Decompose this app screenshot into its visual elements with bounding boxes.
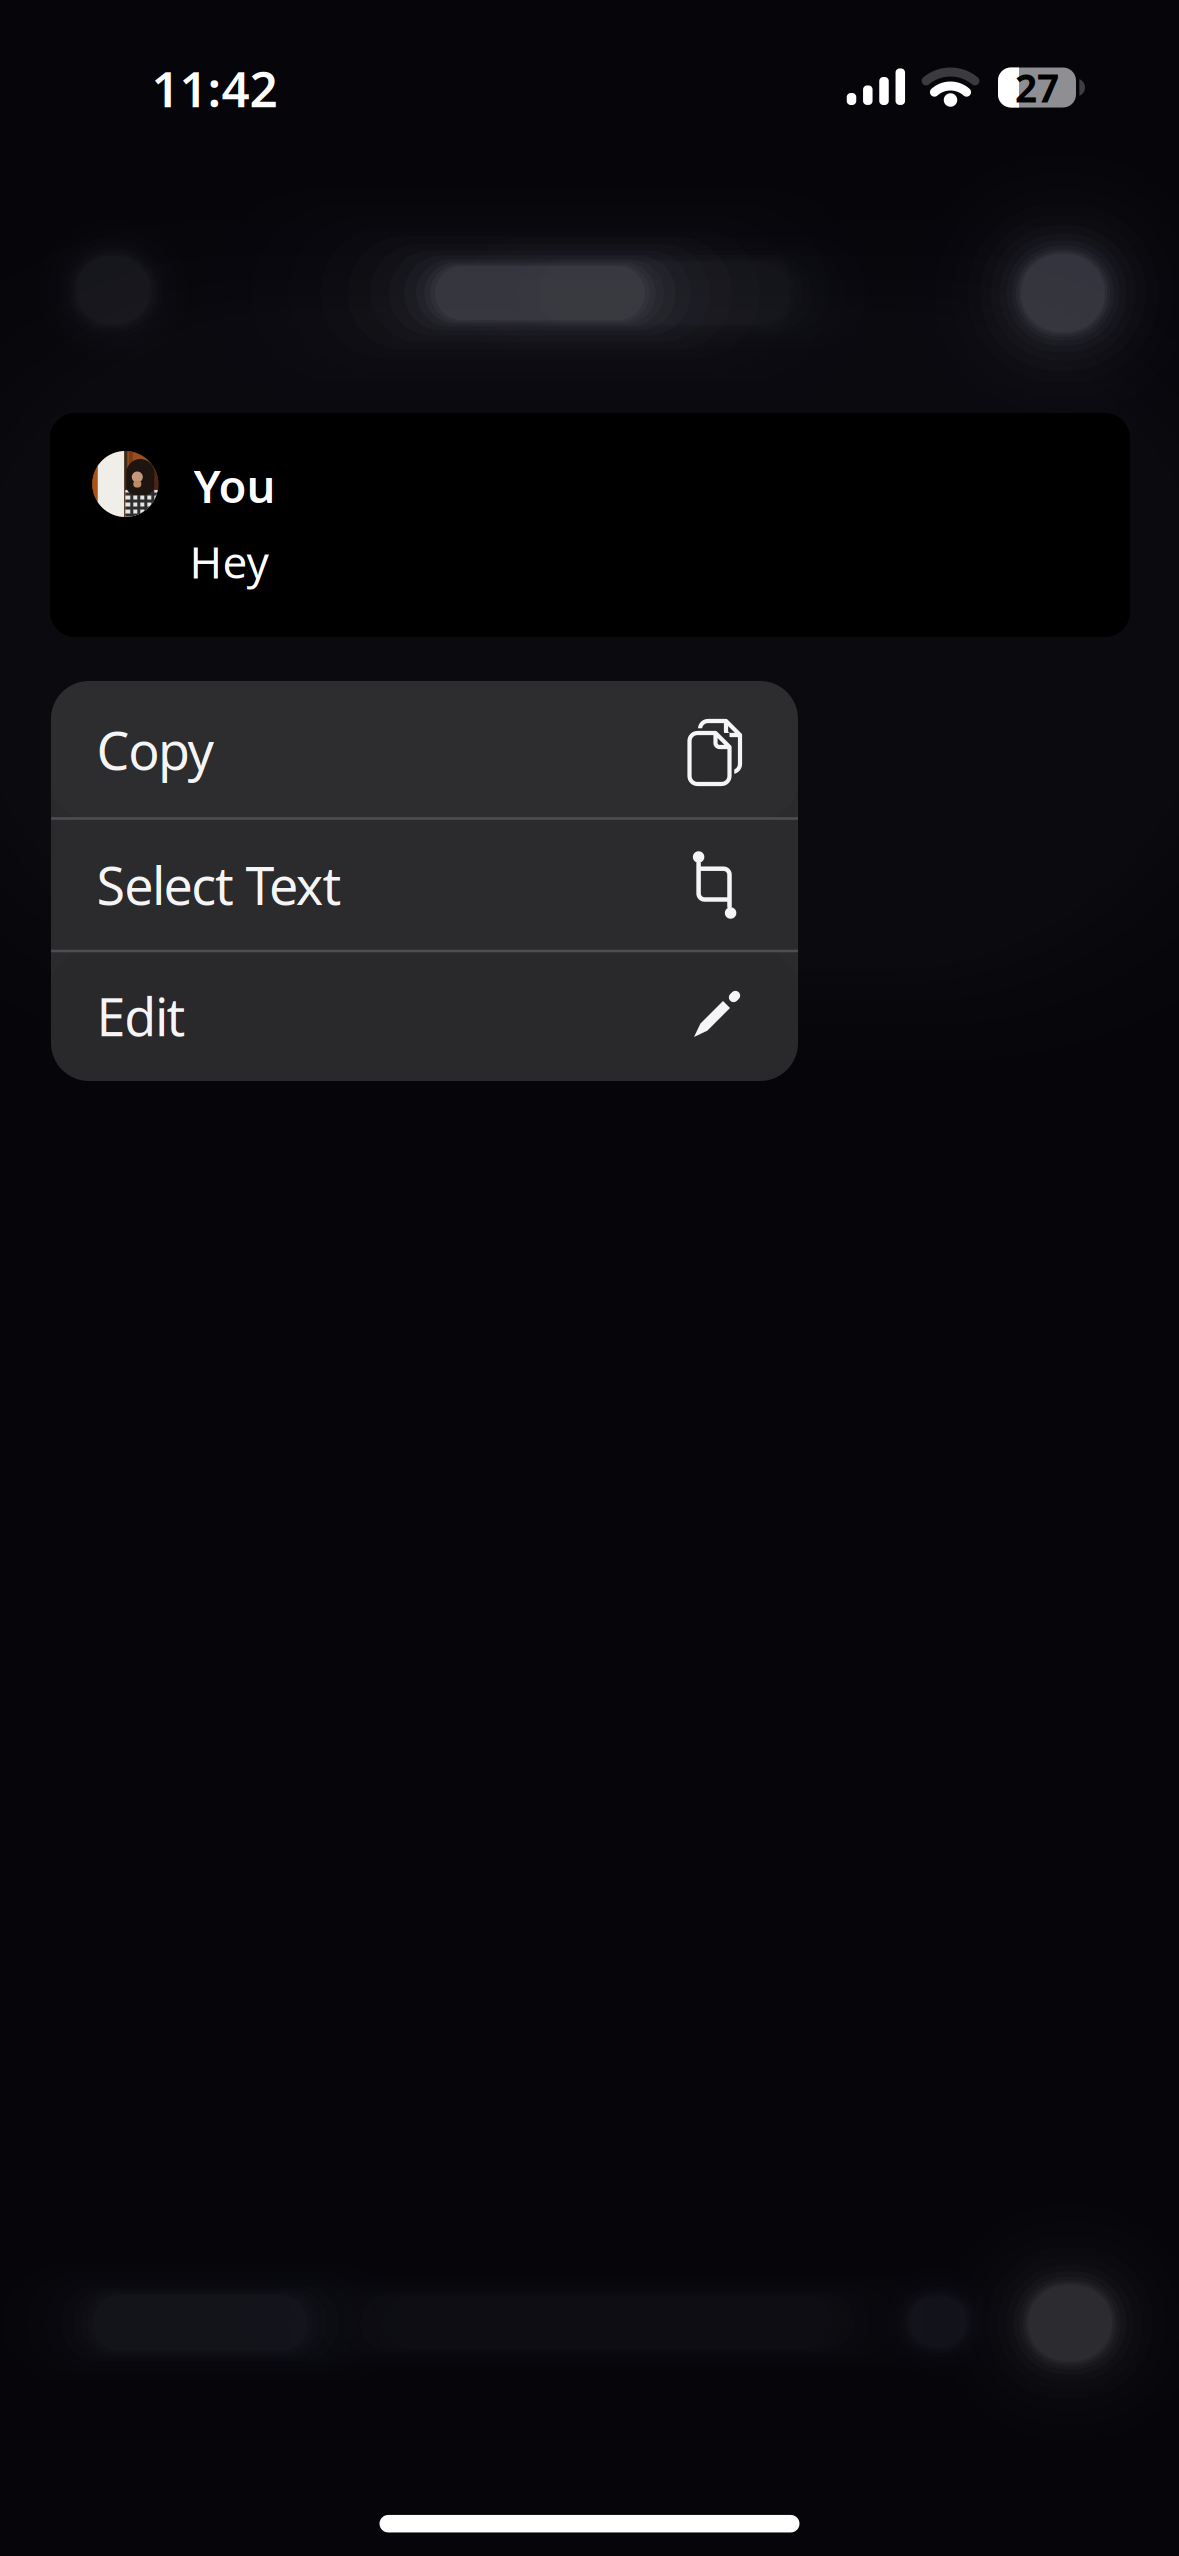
button[interactable]: Copy [51,681,798,818]
staticText: Copy [96,715,215,784]
staticText: You [193,455,275,516]
button[interactable]: You [50,413,1130,637]
staticText: Hey [189,532,268,591]
staticText: 27 [1015,62,1059,113]
button[interactable]: Edit [51,951,798,1081]
staticText: Select Text [96,850,341,919]
staticText: 11:42 [151,55,277,121]
staticText: Edit [96,981,186,1051]
button[interactable]: Select Text [51,818,798,951]
